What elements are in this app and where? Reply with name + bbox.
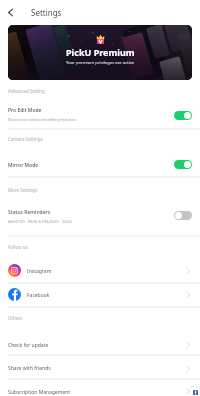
- staticText: Settings: [31, 7, 62, 18]
- staticText: AM:07:00 - 09:00 & PM:20:00 - 22:00: [8, 219, 72, 224]
- button[interactable]: [0, 259, 200, 282]
- staticText: Share with friends: [8, 365, 51, 372]
- staticText: Status Reminders: [8, 209, 51, 216]
- button[interactable]: [0, 100, 200, 128]
- button[interactable]: [0, 154, 200, 176]
- staticText: More Settings: [8, 187, 38, 193]
- staticText: Instagram: [27, 268, 52, 275]
- staticText: Your premium privileges are active: [66, 60, 135, 66]
- button[interactable]: Share to Facebook: [186, 383, 200, 396]
- staticText: Others: [8, 315, 23, 321]
- staticText: Pro Edit Mode: [8, 107, 42, 114]
- button[interactable]: [0, 378, 200, 396]
- staticText: PickU Premium: [66, 46, 135, 58]
- staticText: Advanced Setting: [8, 88, 45, 94]
- button[interactable]: Back: [2, 4, 19, 21]
- button[interactable]: [0, 203, 200, 235]
- button[interactable]: Switch on: [174, 111, 192, 120]
- button[interactable]: [0, 282, 200, 306]
- staticText: Facebook: [27, 292, 50, 299]
- staticText: Show more advanced editing features: [8, 117, 76, 122]
- button[interactable]: Switch off: [174, 211, 192, 220]
- button[interactable]: [0, 332, 200, 354]
- button[interactable]: PickU Premium: [8, 25, 192, 80]
- button[interactable]: Switch on: [174, 160, 192, 169]
- staticText: Subscription Management: [8, 389, 71, 396]
- button[interactable]: [0, 354, 200, 378]
- staticText: Camera Settings: [8, 136, 43, 142]
- staticText: Check for update: [8, 342, 49, 349]
- staticText: Follow us: [8, 244, 28, 250]
- staticText: Mirror Mode: [8, 162, 39, 169]
